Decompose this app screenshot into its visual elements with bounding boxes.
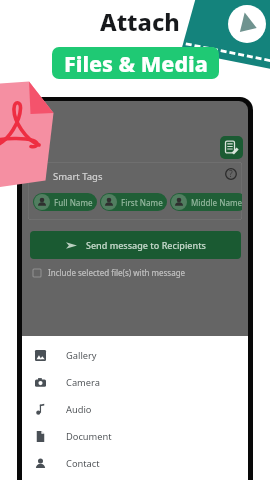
staticText: Full Name: [54, 197, 93, 208]
button[interactable]: Full Name: [33, 193, 97, 211]
button[interactable]: Camera: [22, 369, 248, 396]
staticText: Send message to Recipients: [86, 239, 206, 251]
button[interactable]: First Name: [100, 193, 167, 211]
staticText: First Name: [121, 197, 163, 208]
staticText: Gallery: [66, 349, 97, 362]
staticText: Attach: [100, 6, 180, 38]
button[interactable]: Include selected file(s) with message: [33, 267, 186, 278]
staticText: ?: [229, 168, 233, 180]
button[interactable]: Middle Name: [170, 193, 242, 211]
button[interactable]: Compose message: [220, 136, 243, 159]
staticText: Middle Name: [191, 197, 242, 208]
button[interactable]: Gallery: [22, 342, 248, 369]
staticText: Smart Tags: [53, 170, 103, 183]
button[interactable]: Document: [22, 423, 248, 450]
button[interactable]: Contact: [22, 450, 248, 477]
staticText: Contact: [66, 457, 100, 470]
staticText: Include selected file(s) with message: [48, 267, 186, 278]
button[interactable]: Files & Media: [52, 47, 219, 79]
staticText: Document: [66, 430, 112, 443]
staticText: Audio: [66, 403, 92, 416]
button[interactable]: Play video: [228, 5, 266, 43]
button[interactable]: Audio: [22, 396, 248, 423]
staticText: Files & Media: [64, 49, 208, 78]
staticText: Camera: [66, 376, 100, 389]
button[interactable]: Help: [225, 168, 237, 180]
button[interactable]: Send message to Recipients: [30, 231, 241, 259]
